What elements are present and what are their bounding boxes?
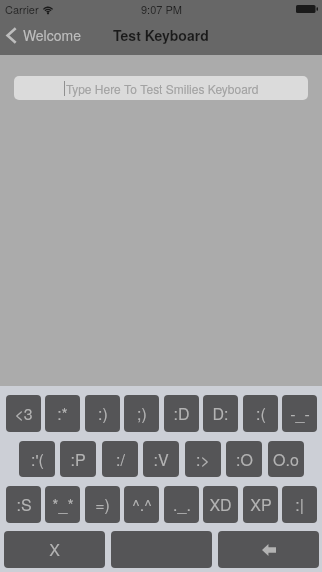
staticText: :D xyxy=(173,402,190,425)
staticText: X xyxy=(49,538,60,561)
staticText: :> xyxy=(196,448,210,471)
button[interactable]: :S xyxy=(6,486,41,523)
button[interactable]: :> xyxy=(185,441,221,477)
staticText: :( xyxy=(256,402,266,425)
button[interactable]: Backspace xyxy=(218,531,319,568)
button[interactable]: *_* xyxy=(45,486,80,523)
staticText: Welcome xyxy=(23,25,81,45)
staticText: Carrier xyxy=(5,1,39,17)
staticText: :P xyxy=(70,448,86,471)
button[interactable]: :| xyxy=(282,486,317,523)
button[interactable]: -_- xyxy=(282,395,317,432)
button[interactable]: :O xyxy=(226,441,262,477)
button[interactable]: :) xyxy=(85,395,120,432)
staticText: XD xyxy=(209,493,232,516)
button[interactable]: =) xyxy=(85,486,120,523)
staticText: :S xyxy=(16,493,32,516)
staticText: =) xyxy=(95,493,110,516)
button[interactable]: <3 xyxy=(6,395,41,432)
button[interactable]: ._. xyxy=(164,486,199,523)
staticText: ._. xyxy=(173,493,191,516)
staticText: Test Keyboard xyxy=(113,25,209,45)
button[interactable]: :( xyxy=(243,395,278,432)
button[interactable]: :'( xyxy=(19,441,55,477)
button[interactable]: ^.^ xyxy=(124,486,159,523)
button[interactable]: O.o xyxy=(268,441,304,477)
staticText: :* xyxy=(57,402,68,425)
button[interactable]: :/ xyxy=(102,441,138,477)
button[interactable]: ;) xyxy=(124,395,159,432)
staticText: 9:07 PM xyxy=(141,1,182,17)
staticText: :/ xyxy=(116,448,125,471)
staticText: D: xyxy=(212,402,229,425)
staticText: :| xyxy=(295,493,304,516)
staticText: :V xyxy=(153,448,169,471)
staticText: <3 xyxy=(14,402,33,425)
staticText: *_* xyxy=(52,493,74,516)
staticText: :'( xyxy=(31,448,44,471)
button[interactable] xyxy=(111,531,212,568)
button[interactable]: XP xyxy=(243,486,278,523)
staticText: Type Here To Test Smilies Keyboard xyxy=(66,80,259,97)
button[interactable]: Type Here To Test Smilies Keyboard xyxy=(14,76,308,100)
staticText: O.o xyxy=(273,448,299,471)
button[interactable]: :D xyxy=(164,395,199,432)
button[interactable]: Welcome xyxy=(6,25,81,45)
staticText: ;) xyxy=(137,402,147,425)
button[interactable]: D: xyxy=(203,395,238,432)
button[interactable]: X xyxy=(4,531,105,568)
staticText: :O xyxy=(236,448,253,471)
button[interactable]: XD xyxy=(203,486,238,523)
staticText: XP xyxy=(250,493,272,516)
button[interactable]: :V xyxy=(143,441,179,477)
staticText: :) xyxy=(98,402,108,425)
button[interactable]: :* xyxy=(45,395,80,432)
staticText: -_- xyxy=(290,402,310,425)
staticText: ^.^ xyxy=(132,493,152,516)
button[interactable]: :P xyxy=(60,441,96,477)
